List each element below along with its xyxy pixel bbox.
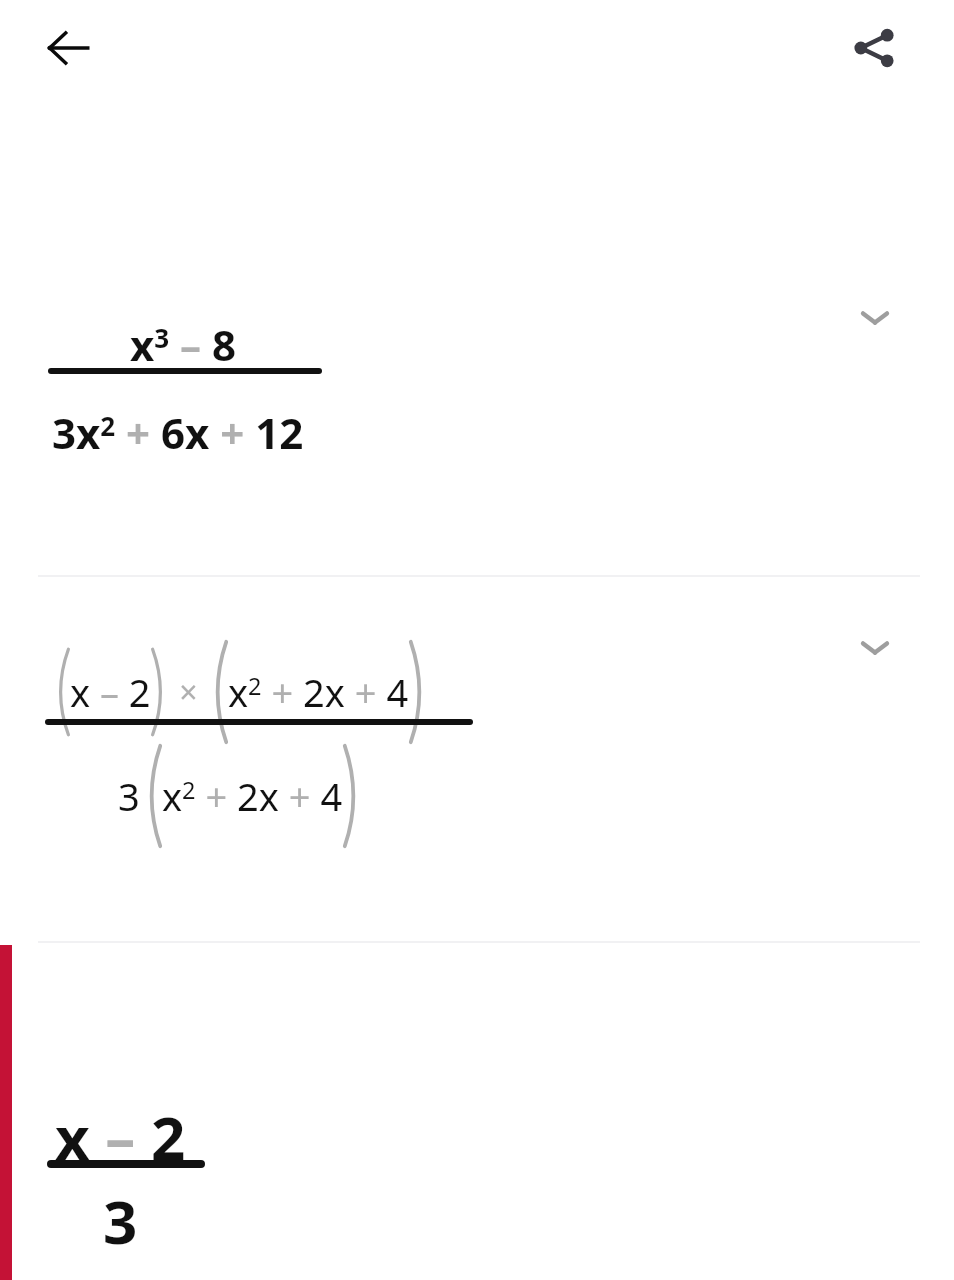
button[interactable]: Expand step 2 bbox=[852, 625, 898, 671]
staticText: x – 2 bbox=[70, 666, 151, 718]
button[interactable]: Back bbox=[45, 25, 91, 71]
staticText: x – 2 bbox=[55, 1096, 186, 1178]
staticText: × bbox=[171, 670, 206, 714]
button[interactable]: Share bbox=[852, 26, 896, 70]
staticText: 3 bbox=[118, 770, 140, 822]
button[interactable]: Expand step 1 bbox=[852, 295, 898, 341]
staticText: x3 – 8 bbox=[130, 316, 237, 373]
staticText: 3 bbox=[103, 1180, 138, 1262]
staticText: 3x2 + 6x + 12 bbox=[52, 404, 304, 461]
staticText: x2 + 2x + 4 bbox=[162, 770, 343, 822]
staticText: x2 + 2x + 4 bbox=[228, 666, 409, 718]
